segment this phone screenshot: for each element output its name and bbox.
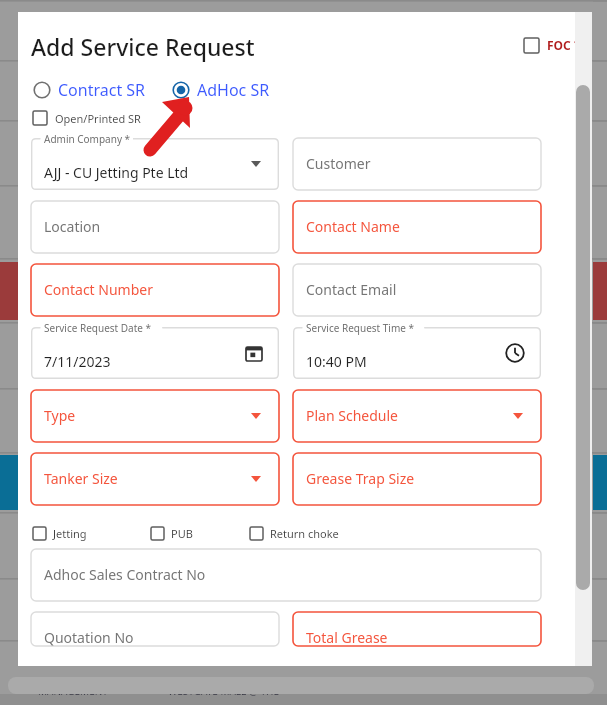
staticText: FOC ?	[547, 37, 580, 53]
staticText: AdHoc SR	[197, 79, 270, 101]
staticText: Open/Printed SR	[55, 111, 141, 126]
staticText: Total Grease	[306, 628, 388, 647]
staticText: Plan Schedule	[306, 406, 398, 425]
staticText: Contact Email	[306, 280, 397, 299]
staticText: Contact Number	[44, 280, 153, 299]
staticText: Adhoc Sales Contract No	[44, 565, 206, 584]
button[interactable]: Contact Email	[293, 264, 541, 316]
button[interactable]: Quotation No	[31, 612, 279, 646]
staticText: Contact Name	[306, 217, 400, 236]
button[interactable]: Open/Printed SR	[31, 106, 141, 130]
staticText: Grease Trap Size	[306, 469, 415, 488]
other: Scroll	[576, 85, 590, 590]
button[interactable]: AdHoc SR	[170, 79, 272, 101]
staticText: Add Service Request	[31, 31, 255, 62]
button[interactable]: Plan Schedule	[293, 390, 541, 442]
staticText: 7/11/2023	[44, 352, 111, 371]
button[interactable]: Service Request Date *	[31, 327, 279, 379]
staticText: Admin Company *	[44, 132, 131, 146]
button[interactable]: Total Grease	[293, 612, 541, 646]
button[interactable]: Location	[31, 201, 279, 253]
staticText: Return choke	[270, 526, 339, 541]
staticText: MANAGEMENT	[38, 684, 108, 698]
button[interactable]: Type	[31, 390, 279, 442]
staticText: Quotation No	[44, 628, 134, 647]
staticText: AJJ - CU Jetting Pte Ltd	[44, 163, 189, 182]
staticText: Customer	[306, 154, 371, 173]
staticText: Tanker Size	[44, 469, 118, 488]
button[interactable]: Contact Name	[293, 201, 541, 253]
button[interactable]: Tanker Size	[31, 453, 279, 505]
button[interactable]: Return choke	[250, 526, 339, 541]
button[interactable]: FOC ?	[524, 37, 580, 53]
staticText: Service Request Time *	[306, 321, 415, 335]
button[interactable]: Contact Number	[31, 264, 279, 316]
staticText: Type	[44, 406, 76, 425]
button[interactable]: Adhoc Sales Contract No	[31, 549, 541, 601]
staticText: 10:40 PM	[306, 352, 367, 371]
staticText: Jetting	[53, 526, 87, 541]
staticText: Location	[44, 217, 101, 236]
staticText: Contract SR	[58, 79, 146, 101]
button[interactable]: Contract SR	[31, 79, 148, 101]
staticText: WESTGATE MALL @ THE	[168, 684, 280, 698]
button[interactable]: Grease Trap Size	[293, 453, 541, 505]
staticText: Service Request Date *	[44, 321, 152, 335]
button[interactable]: Jetting	[33, 526, 87, 541]
staticText: PUB	[171, 526, 193, 541]
button[interactable]: PUB	[151, 526, 193, 541]
button[interactable]: Customer	[293, 138, 541, 190]
button[interactable]: Service Request Time *	[293, 327, 541, 379]
button[interactable]: Admin Company *	[31, 138, 279, 190]
